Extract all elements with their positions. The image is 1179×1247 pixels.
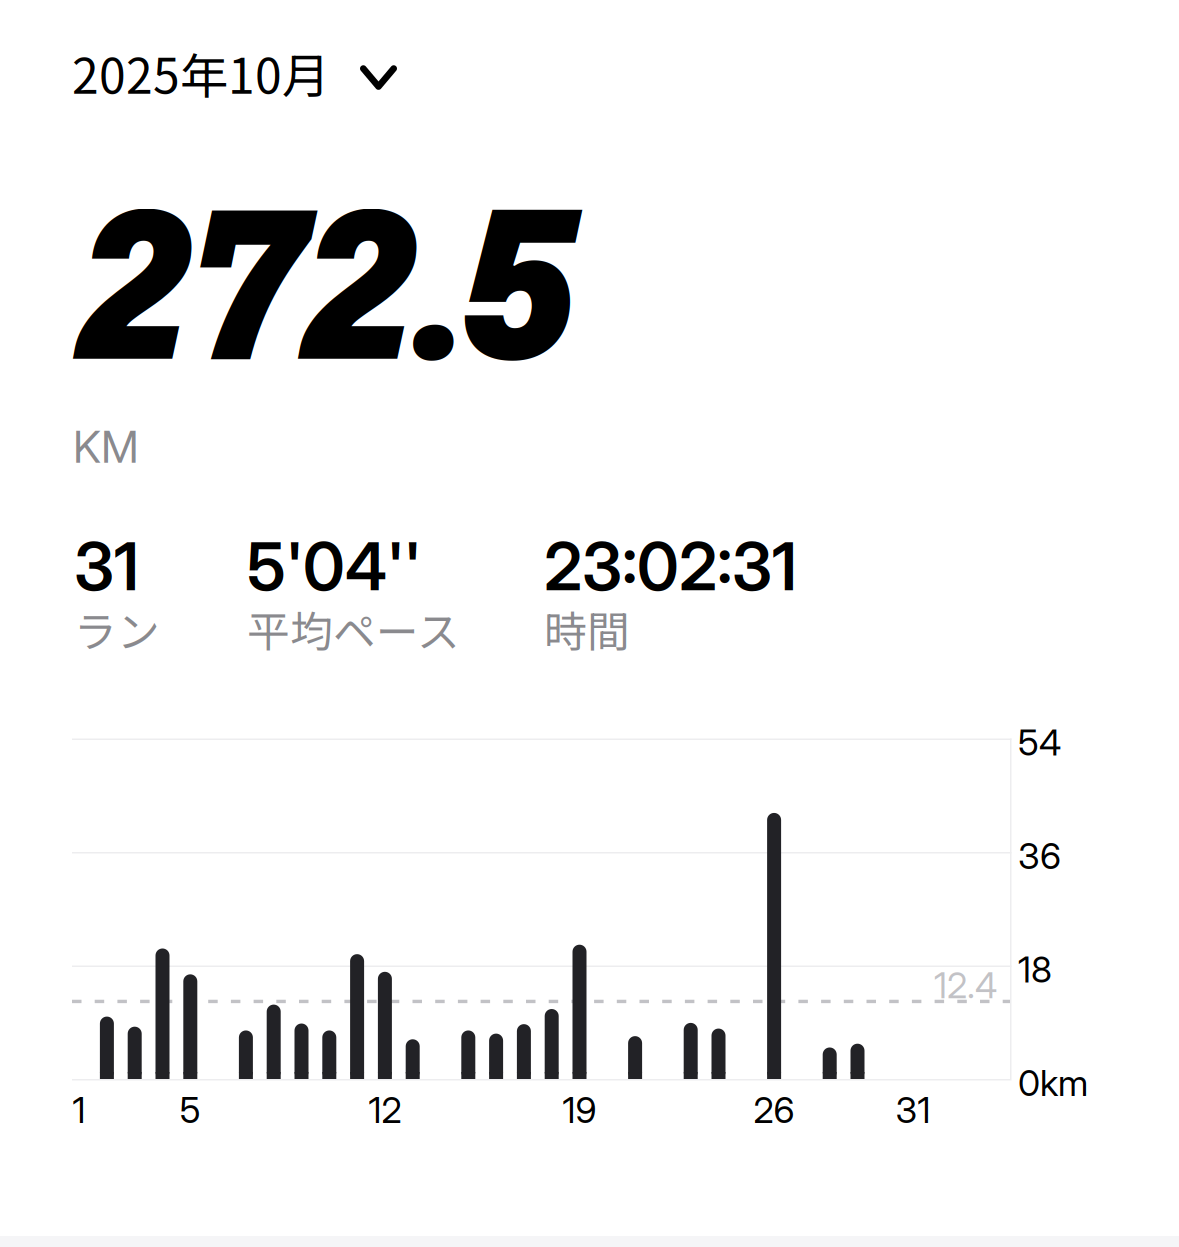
staticText: 平均ペース [247, 598, 460, 660]
staticText: 54 [1018, 720, 1061, 764]
staticText: 26 [754, 1088, 795, 1132]
staticText: 18 [1018, 947, 1052, 991]
staticText: 31 [896, 1088, 931, 1132]
staticText: 0km [1018, 1061, 1088, 1105]
staticText: 5 [180, 1088, 201, 1132]
staticText: 1 [73, 1088, 86, 1132]
staticText: 23:02:31 [544, 527, 797, 606]
staticText: ラン [74, 598, 160, 660]
staticText: 36 [1018, 834, 1061, 878]
staticText: 時間 [544, 598, 630, 660]
staticText: 31 [74, 527, 139, 606]
staticText: 12.4 [934, 963, 997, 1007]
staticText: 12 [368, 1088, 401, 1132]
staticText: 5'04'' [247, 527, 421, 606]
staticText: KM [73, 420, 139, 473]
button[interactable]: 2025年10月 [72, 38, 397, 107]
staticText: 2025年10月 [72, 38, 330, 107]
staticText: 19 [562, 1088, 596, 1132]
staticText: 272.5 [78, 135, 576, 424]
